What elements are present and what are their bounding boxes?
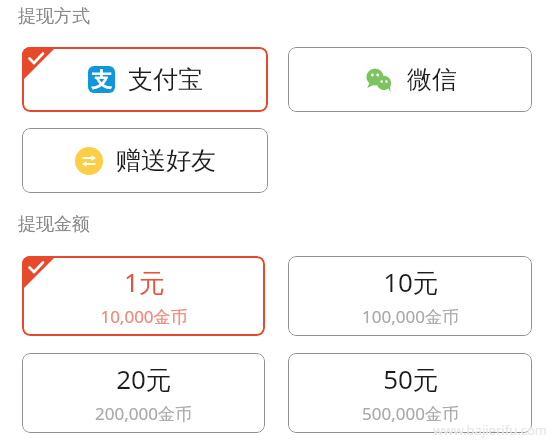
staticText: 支付宝 [128,64,203,95]
button[interactable]: 20元 [22,353,265,433]
button[interactable]: 微信 [288,47,532,112]
button[interactable]: 赠送好友 [22,128,268,193]
button[interactable]: 支 [22,47,268,112]
staticText: www.bajierifu.com [433,421,547,439]
button[interactable]: 1元 [22,256,265,336]
staticText: 微信 [407,64,457,95]
button[interactable]: 50元 [288,353,532,433]
staticText: 20元 [116,361,172,397]
staticText: 提现金额 [18,213,90,236]
button[interactable]: 10元 [288,256,532,336]
staticText: 100,000金币 [362,305,459,328]
staticText: 500,000金币 [362,402,459,425]
staticText: 200,000金币 [95,402,192,425]
staticText: 10,000金币 [100,305,188,328]
staticText: 支 [91,67,112,93]
staticText: 提现方式 [18,5,90,28]
staticText: 1元 [124,264,165,300]
staticText: 50元 [383,361,439,397]
staticText: 赠送好友 [116,145,216,176]
staticText: 10元 [383,264,439,300]
